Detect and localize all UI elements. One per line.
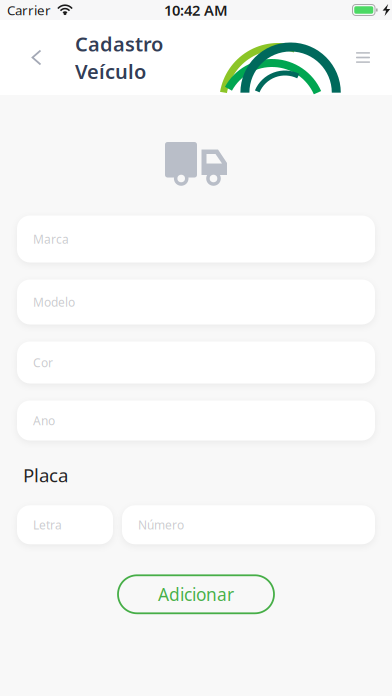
button[interactable]: Letra — [17, 505, 113, 544]
staticText: Número — [138, 517, 184, 533]
staticText: Modelo — [33, 294, 75, 310]
staticText: Cadastro — [75, 30, 163, 57]
button[interactable]: Modelo — [17, 279, 375, 324]
button[interactable]: Adicionar — [118, 575, 274, 613]
staticText: Ano — [33, 412, 55, 428]
staticText: Veículo — [75, 58, 146, 85]
staticText: Letra — [33, 517, 62, 533]
staticText: Adicionar — [158, 583, 234, 606]
staticText: Marca — [33, 231, 69, 247]
button[interactable]: Número — [122, 505, 375, 544]
staticText: 10:42 AM — [164, 0, 228, 20]
button[interactable]: Marca — [17, 215, 375, 262]
staticText: Placa — [23, 462, 68, 487]
staticText: Cor — [33, 354, 53, 370]
button[interactable]: Menu — [346, 35, 380, 79]
button[interactable]: Back — [16, 35, 58, 79]
staticText: Carrier — [7, 1, 51, 19]
